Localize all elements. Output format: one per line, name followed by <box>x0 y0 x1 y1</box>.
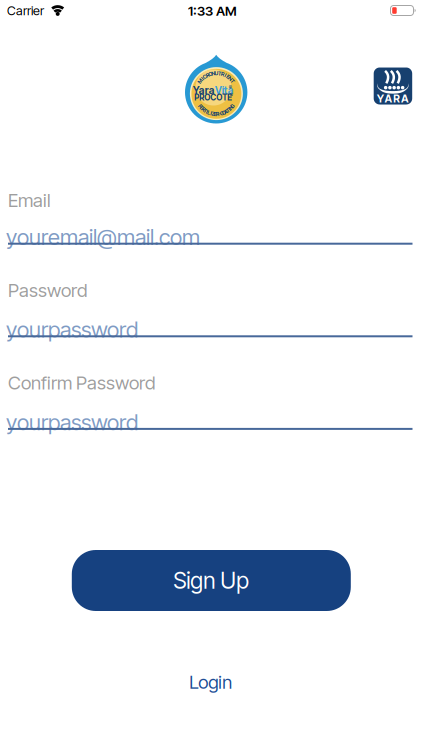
staticText: R <box>206 72 209 79</box>
staticText: youremail@mail.com <box>6 224 200 250</box>
staticText: E <box>214 111 217 117</box>
staticText: U <box>214 70 218 76</box>
staticText: E <box>226 73 229 80</box>
staticText: - <box>219 110 221 117</box>
staticText: C <box>203 73 207 80</box>
staticText: N <box>228 75 232 82</box>
staticText: Password <box>8 279 87 301</box>
staticText: T <box>226 107 229 114</box>
staticText: I <box>225 72 226 79</box>
staticText: yourpassword <box>6 316 138 343</box>
button[interactable]: Sign Up <box>72 550 351 611</box>
staticText: R <box>202 106 205 113</box>
staticText: Email <box>8 189 51 212</box>
staticText: yourpassword <box>6 409 138 435</box>
staticText: R <box>221 71 224 77</box>
staticText: O <box>208 71 212 77</box>
staticText: T <box>204 107 207 114</box>
staticText: O <box>222 109 226 116</box>
staticText: C <box>220 110 224 117</box>
staticText: Vita <box>215 84 234 96</box>
button[interactable]: Login <box>189 671 232 693</box>
staticText: A <box>224 108 228 115</box>
staticText: E <box>200 104 203 111</box>
staticText: T <box>218 70 221 77</box>
staticText: I <box>210 110 211 117</box>
staticText: Sign Up <box>173 567 249 594</box>
staticText: R <box>216 111 219 117</box>
staticText: YARA <box>377 92 409 105</box>
staticText: Z <box>212 110 215 117</box>
staticText: L <box>207 109 210 116</box>
staticText: Yara <box>193 84 215 96</box>
staticText: M <box>198 78 203 84</box>
staticText: F <box>199 103 202 109</box>
staticText: I <box>206 108 207 115</box>
staticText: G <box>230 103 234 109</box>
staticText: PROCOTE <box>194 92 232 102</box>
staticText: 1:33 AM <box>188 3 237 19</box>
staticText: I <box>202 75 203 82</box>
staticText: N <box>229 104 233 111</box>
staticText: N <box>211 70 215 77</box>
staticText: Confirm Password <box>8 371 155 394</box>
staticText: ® <box>230 92 233 99</box>
staticText: T <box>231 78 234 84</box>
staticText: ® <box>229 85 232 91</box>
staticText: I <box>229 106 230 113</box>
staticText: Login <box>189 671 232 693</box>
staticText: Carrier <box>7 3 44 18</box>
